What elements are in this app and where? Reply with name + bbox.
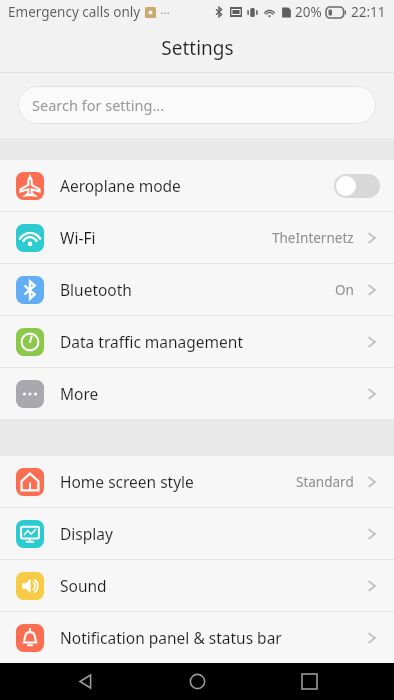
staticText: Notification panel & status bar (60, 627, 282, 648)
staticText: TheInternetz (272, 229, 354, 247)
button[interactable]: Display (0, 508, 394, 559)
staticText: Data traffic management (60, 331, 243, 352)
button[interactable]: Notification panel & status bar (0, 612, 394, 663)
button[interactable]: Home (170, 663, 224, 700)
button[interactable]: Aeroplane mode (0, 160, 394, 211)
button[interactable]: More (0, 368, 394, 419)
button[interactable]: Aeroplane mode toggle (334, 174, 380, 198)
staticText: More (60, 383, 99, 404)
staticText: Wi-Fi (60, 227, 96, 248)
staticText: Emergency calls only (8, 3, 141, 21)
staticText: Home screen style (60, 471, 194, 492)
staticText: Display (60, 523, 113, 544)
staticText: Sound (60, 575, 107, 596)
button[interactable]: Wi-Fi (0, 212, 394, 263)
button[interactable]: Back (58, 663, 112, 700)
staticText: On (335, 281, 354, 299)
button[interactable]: Home screen style (0, 456, 394, 507)
button[interactable]: Bluetooth (0, 264, 394, 315)
staticText: Search for setting... (32, 95, 165, 115)
button[interactable]: Recent apps (282, 663, 336, 700)
staticText: Settings (161, 35, 234, 61)
staticText: Bluetooth (60, 279, 132, 300)
button[interactable]: Data traffic management (0, 316, 394, 367)
staticText: Standard (296, 473, 354, 491)
button[interactable]: Sound (0, 560, 394, 611)
staticText: 20% (295, 3, 322, 21)
button[interactable]: Search for setting... (18, 86, 376, 124)
staticText: Aeroplane mode (60, 175, 181, 196)
staticText: 22:11 (351, 3, 386, 21)
